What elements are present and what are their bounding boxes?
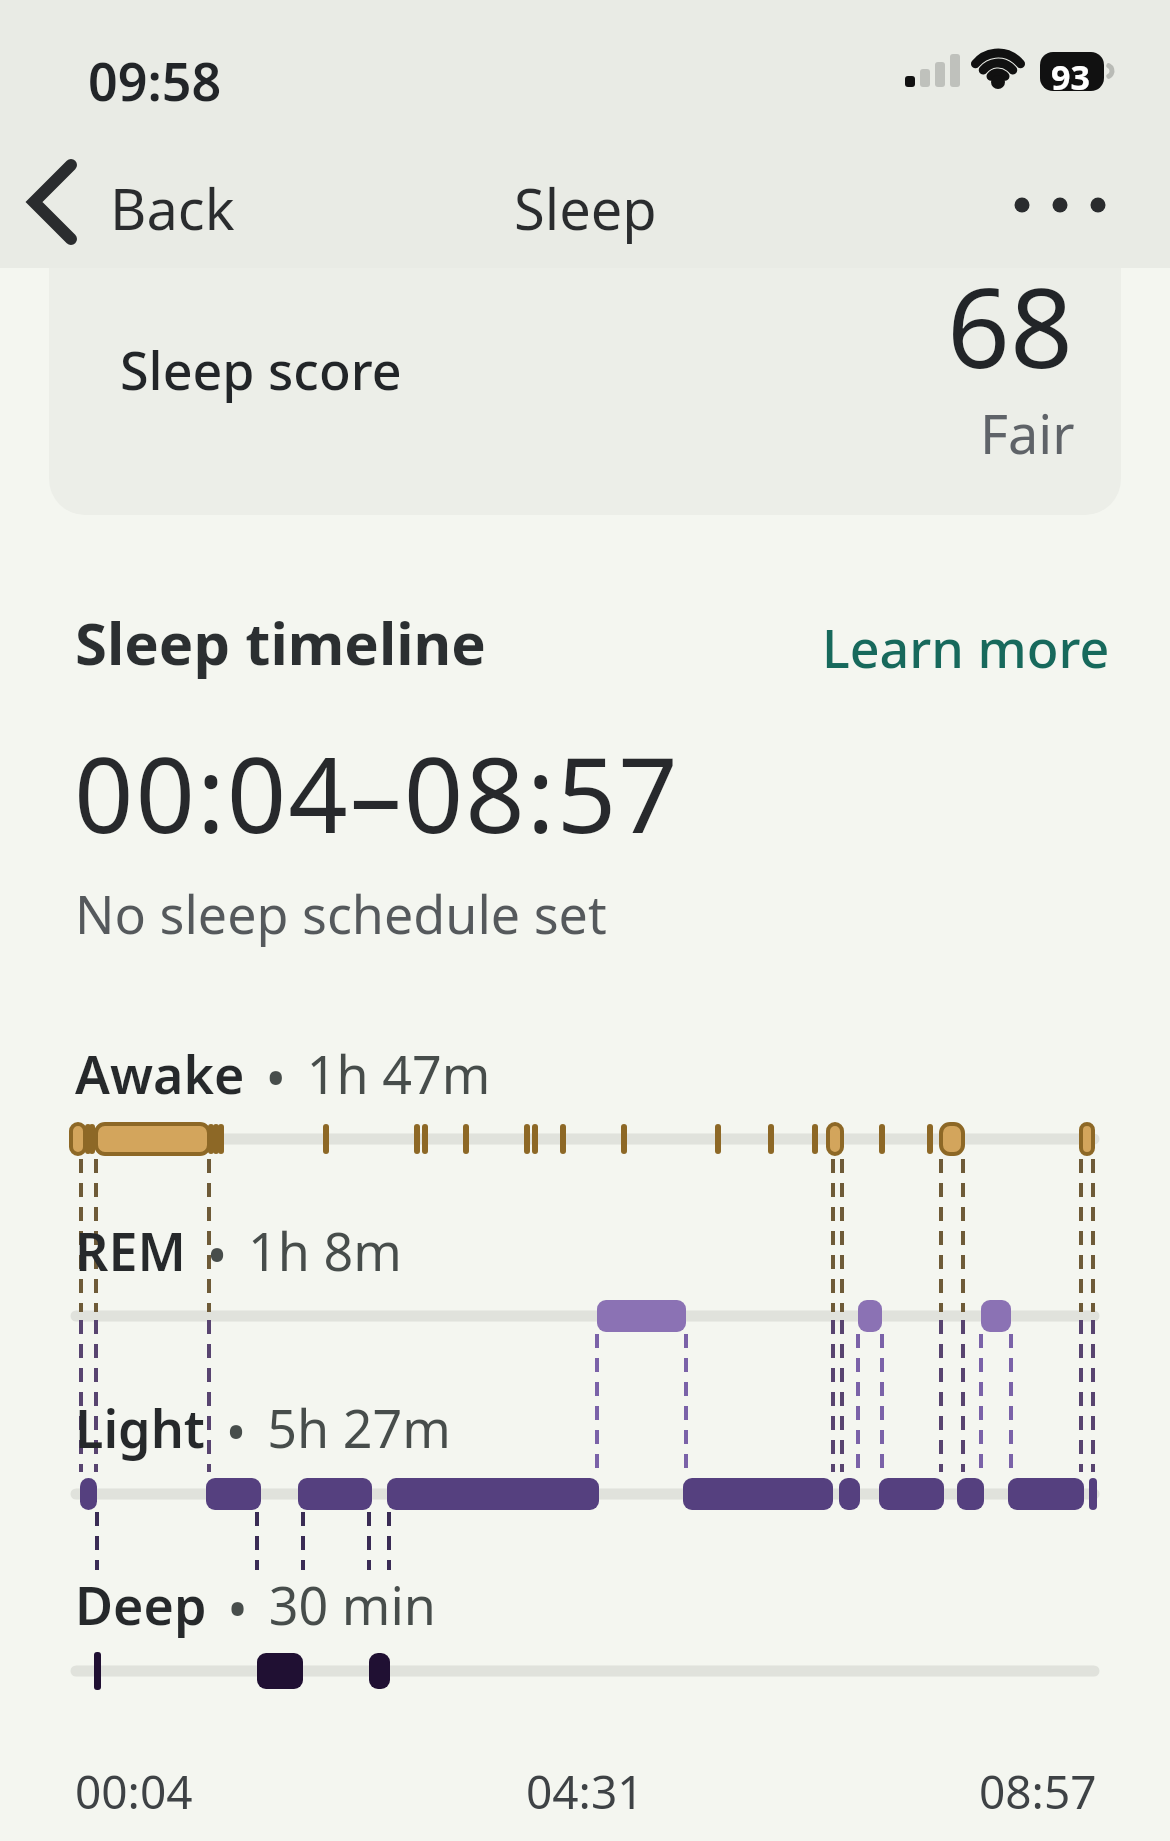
staticText: 68 — [947, 250, 1073, 400]
staticText: Light • 5h 27m — [75, 1392, 451, 1463]
button[interactable]: Back — [20, 150, 250, 256]
staticText: Learn more — [822, 612, 1110, 683]
staticText: Sleep timeline — [75, 603, 486, 682]
staticText: Deep • 30 min — [75, 1569, 436, 1640]
staticText: 00:04–08:57 — [74, 722, 680, 864]
button[interactable]: Sleep score — [49, 268, 1121, 515]
staticText: Fair — [980, 396, 1075, 470]
staticText: 08:57 — [979, 1760, 1097, 1823]
staticText: Awake • 1h 47m — [75, 1038, 491, 1109]
staticText: Sleep score — [120, 334, 402, 405]
staticText: 00:04 — [75, 1760, 193, 1823]
staticText: REM • 1h 8m — [75, 1215, 402, 1286]
staticText: No sleep schedule set — [75, 878, 607, 949]
staticText: Back — [110, 170, 235, 246]
staticText: 04:31 — [526, 1760, 644, 1823]
staticText: 93 — [1051, 54, 1090, 100]
button[interactable] — [995, 170, 1125, 240]
staticText: 09:58 — [88, 45, 222, 116]
staticText: Sleep — [514, 170, 657, 246]
button[interactable]: Learn more — [822, 612, 1110, 683]
